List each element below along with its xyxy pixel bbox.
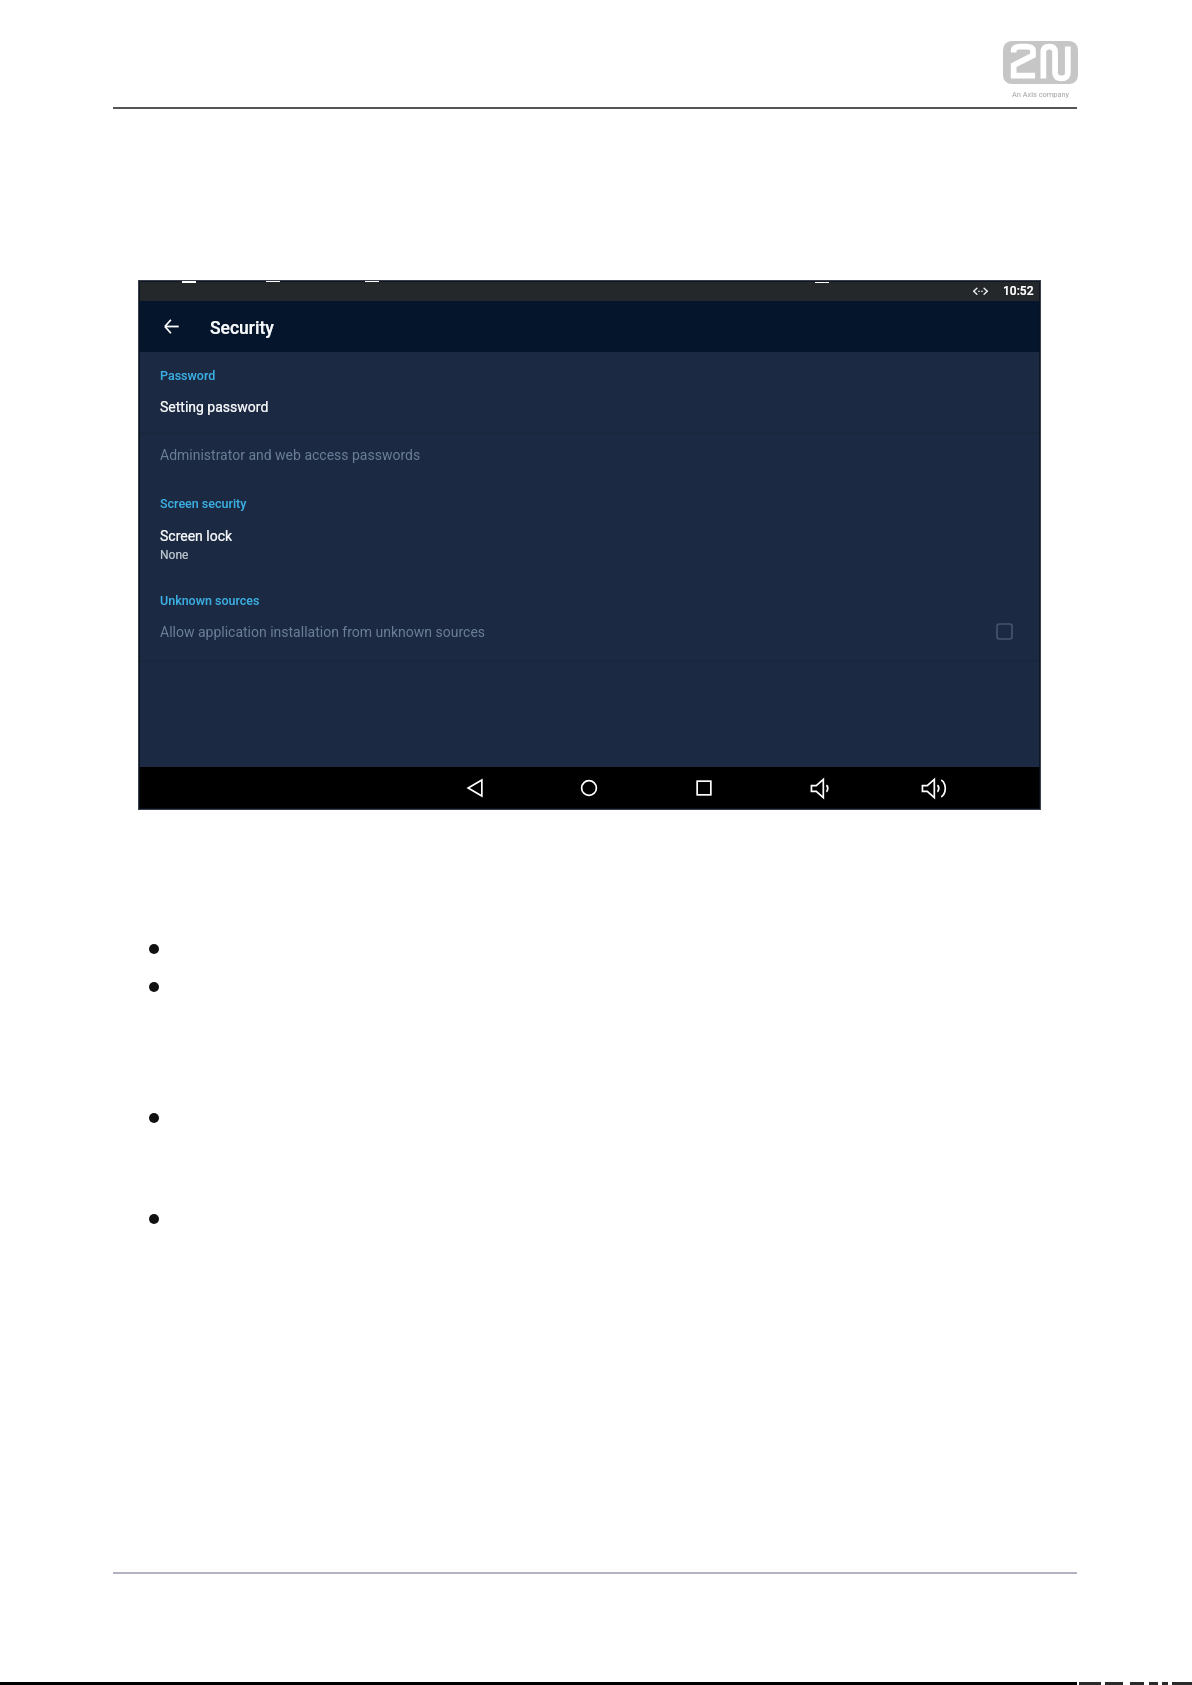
staticText: Security <box>210 318 274 339</box>
button[interactable]: Volume down <box>801 767 843 809</box>
staticText: Administrator and web access passwords <box>160 447 421 463</box>
button[interactable]: Allow application installation from unkn… <box>139 615 1040 660</box>
button[interactable]: Screen lock <box>139 521 1040 571</box>
staticText: Allow application installation from unkn… <box>160 624 486 640</box>
button[interactable]: Back <box>454 767 496 809</box>
button[interactable]: Navigate up <box>157 312 186 341</box>
staticText: 10:52 <box>1003 284 1034 298</box>
staticText: Password <box>160 368 216 383</box>
staticText: Screen security <box>160 496 247 511</box>
button[interactable]: Home <box>568 767 610 809</box>
button[interactable]: Volume up <box>912 767 954 809</box>
staticText: Setting password <box>160 399 269 415</box>
button[interactable]: Setting password <box>139 389 1040 432</box>
staticText: An Axis company <box>1012 90 1069 99</box>
staticText: Unknown sources <box>160 593 260 608</box>
staticText: None <box>160 548 189 562</box>
staticText: Screen lock <box>160 528 233 544</box>
button[interactable]: Recent apps <box>683 767 725 809</box>
button[interactable]: Administrator and web access passwords <box>139 434 1040 480</box>
